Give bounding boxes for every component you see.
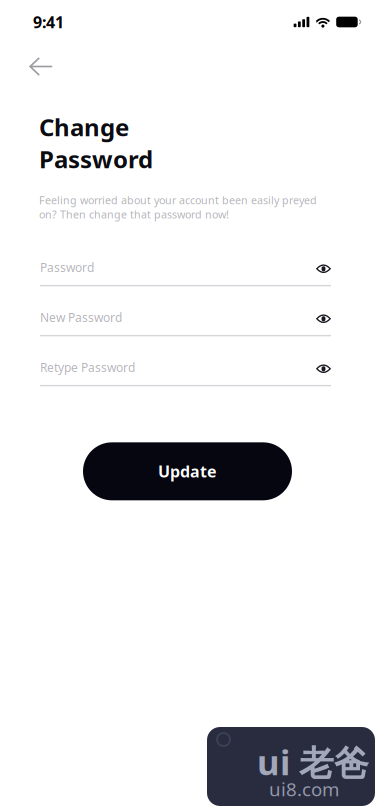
staticText: Change: [39, 111, 129, 143]
staticText: Feeling worried about your account been …: [39, 193, 317, 221]
button[interactable]: Back: [0, 44, 89, 76]
button[interactable]: Update: [83, 442, 292, 500]
staticText: 9:41: [33, 11, 64, 33]
button[interactable]: Show Password: [316, 259, 331, 275]
staticText: Update: [158, 461, 217, 482]
staticText: ui8.com: [269, 777, 339, 801]
staticText: Password: [39, 143, 153, 175]
staticText: New Password: [40, 309, 122, 325]
staticText: Password: [40, 259, 94, 275]
staticText: Retype Password: [40, 359, 135, 375]
staticText: ui 老爸: [257, 739, 369, 785]
button[interactable]: Show Retype Password: [316, 359, 331, 375]
button[interactable]: Show New Password: [316, 309, 331, 325]
